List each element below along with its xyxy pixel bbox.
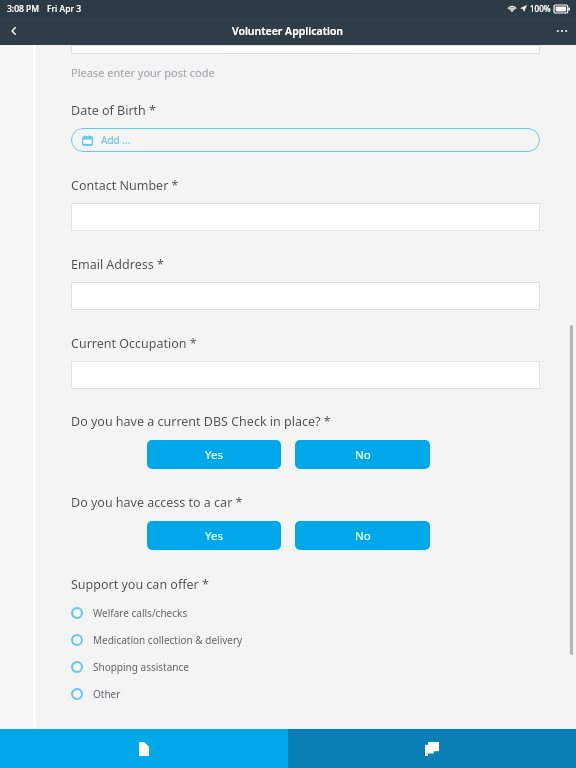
button[interactable]: Shopping assistance — [71, 660, 576, 674]
button[interactable]: Yes — [147, 440, 281, 469]
staticText: No — [355, 528, 371, 544]
staticText: Support you can offer * — [71, 576, 209, 593]
button[interactable]: No — [295, 440, 430, 469]
button[interactable] — [71, 282, 540, 310]
staticText: Do you have access to a car * — [71, 494, 243, 511]
staticText: Date of Birth * — [71, 102, 156, 119]
staticText: 3:08 PM — [7, 3, 40, 15]
staticText: Contact Number * — [71, 177, 179, 194]
staticText: No — [355, 447, 371, 463]
staticText: Email Address * — [71, 256, 164, 273]
staticText: Yes — [205, 528, 223, 544]
button[interactable]: Forms — [0, 729, 288, 768]
staticText: Yes — [205, 447, 223, 463]
staticText: Add ... — [101, 133, 131, 147]
staticText: 100% — [530, 3, 551, 14]
staticText: Welfare calls/checks — [93, 606, 188, 620]
button[interactable]: Messages — [288, 729, 576, 768]
button[interactable]: More options — [548, 17, 576, 45]
staticText: Medication collection & delivery — [93, 633, 243, 647]
staticText: Current Occupation * — [71, 335, 197, 352]
button[interactable]: Add ... — [71, 128, 540, 152]
button[interactable]: Other — [71, 687, 576, 701]
staticText: Do you have a current DBS Check in place… — [71, 413, 331, 430]
button[interactable] — [71, 203, 540, 231]
button[interactable] — [71, 361, 540, 389]
staticText: Volunteer Application — [232, 24, 344, 38]
button[interactable]: No — [295, 521, 430, 550]
staticText: Please enter your post code — [71, 65, 215, 80]
button[interactable]: Back — [0, 17, 28, 45]
button[interactable]: Yes — [147, 521, 281, 550]
button[interactable]: Welfare calls/checks — [71, 606, 576, 620]
staticText: Shopping assistance — [93, 660, 189, 674]
button[interactable]: Medication collection & delivery — [71, 633, 576, 647]
staticText: Other — [93, 687, 121, 701]
staticText: Fri Apr 3 — [47, 3, 82, 15]
